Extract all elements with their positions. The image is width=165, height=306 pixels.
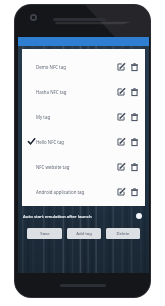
button[interactable]: Delete My tag [129,111,140,122]
staticText: Demo NFC tag [36,64,115,70]
staticText: NFC website tag [36,164,115,170]
button[interactable]: Auto start emulation after launch [23,209,144,223]
button[interactable]: Delete NFC website tag [129,161,140,172]
button[interactable]: Edit Demo NFC tag [115,61,126,72]
button[interactable]: Edit My tag [115,111,126,122]
button[interactable]: Add tag [67,228,101,239]
button[interactable]: Delete Demo NFC tag [129,61,140,72]
button[interactable]: Edit Hasha NFC tag [115,86,126,97]
staticText: Add tag [76,231,92,237]
button[interactable]: Delete Hasha NFC tag [129,86,140,97]
button[interactable]: Hello NFC tag [22,129,145,154]
staticText: Hasha NFC tag [36,89,115,95]
button[interactable]: My tag [22,104,145,129]
staticText: My tag [36,114,115,120]
button[interactable]: Edit Android application tag [115,186,126,197]
staticText: Save [40,231,50,237]
button[interactable]: Save [27,228,62,239]
button[interactable]: Edit Hello NFC tag [115,136,126,147]
staticText: Android application tag [36,189,115,195]
button[interactable]: Delete Android application tag [129,186,140,197]
button[interactable]: Delete [106,228,140,239]
button[interactable]: Demo NFC tag [22,54,145,79]
button[interactable]: Android application tag [22,179,145,204]
button[interactable]: NFC website tag [22,154,145,179]
button[interactable]: Delete Hello NFC tag [129,136,140,147]
staticText: Hello NFC tag [36,139,115,145]
staticText: Auto start emulation after launch [23,213,92,219]
button[interactable]: Edit NFC website tag [115,161,126,172]
staticText: Delete [116,231,130,237]
button[interactable]: Hasha NFC tag [22,79,145,104]
